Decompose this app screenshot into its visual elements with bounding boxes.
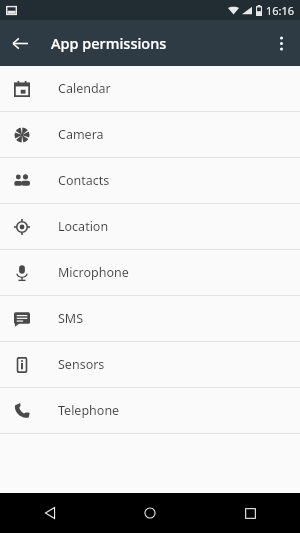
button[interactable]: Microphone [0, 250, 300, 295]
staticText: Contacts [58, 172, 110, 189]
staticText: 16:16 [266, 3, 295, 18]
staticText: Microphone [58, 264, 129, 281]
button[interactable]: Camera [0, 112, 300, 157]
button[interactable]: Contacts [0, 158, 300, 203]
button[interactable]: Location [0, 204, 300, 249]
button[interactable]: Back [0, 493, 100, 533]
staticText: Location [58, 218, 109, 235]
staticText: Sensors [58, 356, 105, 373]
staticText: App permissions [51, 33, 167, 53]
button[interactable]: Telephone [0, 388, 300, 433]
button[interactable]: SMS [0, 296, 300, 341]
button[interactable]: More options [262, 24, 300, 62]
button[interactable]: Recent apps [200, 493, 300, 533]
staticText: Calendar [58, 80, 111, 97]
button[interactable]: Sensors [0, 342, 300, 387]
button[interactable]: Navigate up [0, 23, 40, 63]
staticText: Camera [58, 126, 104, 143]
button[interactable]: Calendar [0, 66, 300, 111]
button[interactable]: Home [100, 493, 200, 533]
staticText: Telephone [58, 402, 120, 419]
staticText: SMS [58, 310, 84, 327]
